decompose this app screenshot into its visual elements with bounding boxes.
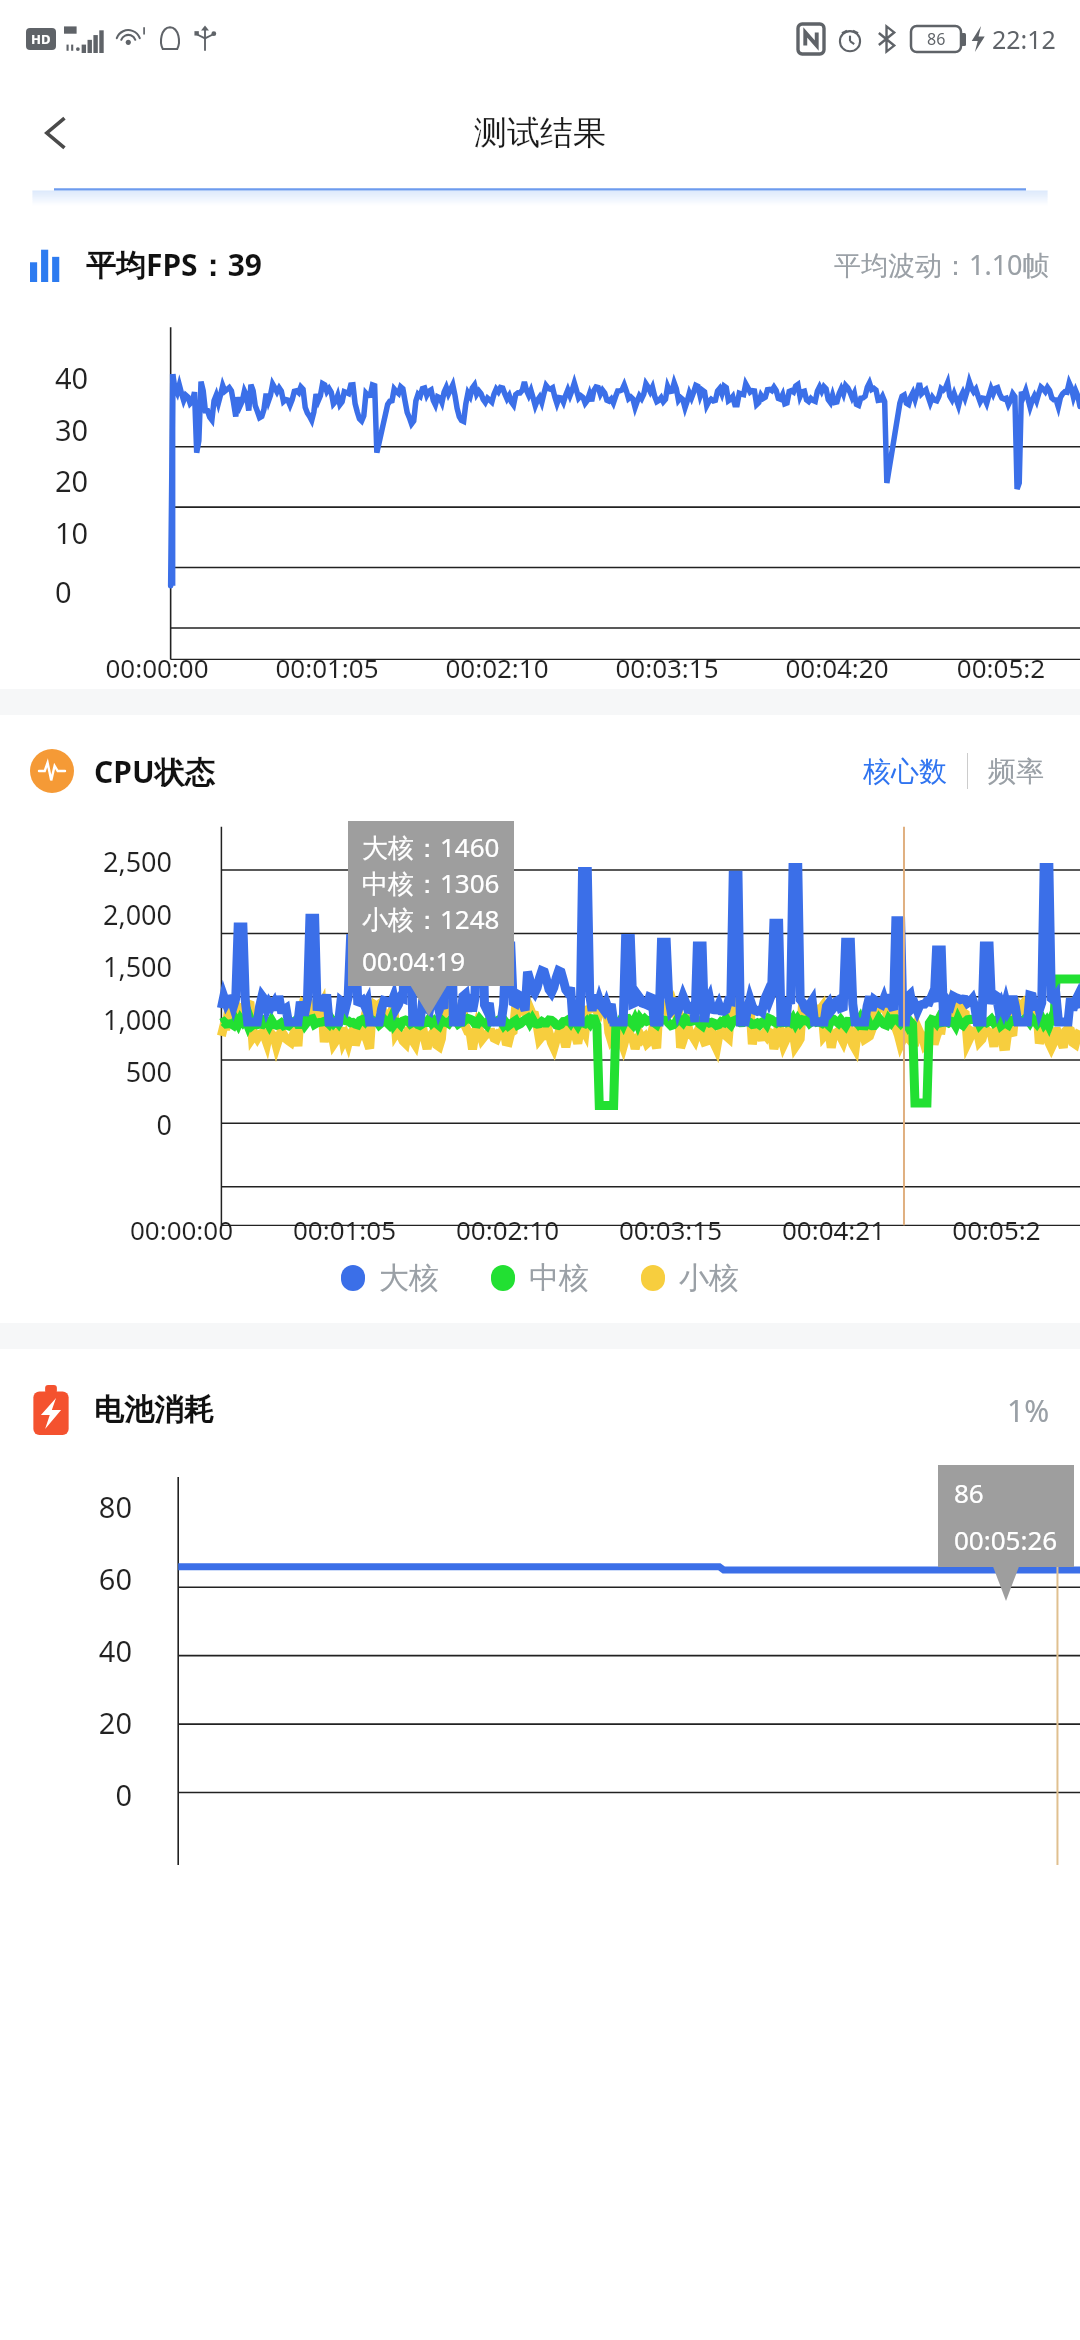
- staticText: 0: [0, 1106, 172, 1143]
- button[interactable]: 电池消耗: [30, 1385, 1050, 1435]
- button[interactable]: 核心数: [857, 750, 953, 793]
- staticText: 00:00:00: [72, 650, 242, 685]
- staticText: 中核：1306: [362, 865, 500, 901]
- staticText: 0: [55, 572, 72, 611]
- staticText: 00:02:10: [412, 650, 582, 685]
- staticText: 00:01:05: [242, 650, 412, 685]
- staticText: 1,000: [0, 1001, 172, 1038]
- staticText: 10: [55, 513, 89, 552]
- staticText: 2,500: [0, 843, 172, 880]
- staticText: 0: [0, 1775, 132, 1814]
- staticText: 小核: [679, 1259, 739, 1297]
- staticText: 30: [55, 410, 89, 449]
- staticText: 00:04:19: [362, 943, 466, 978]
- staticText: 1,500: [0, 948, 172, 985]
- staticText: 平均波动：1.10帧: [834, 246, 1050, 283]
- staticText: 平均FPS：39: [86, 244, 262, 285]
- staticText: HD: [31, 30, 51, 48]
- staticText: 22:12: [992, 22, 1056, 56]
- staticText: 500: [0, 1053, 172, 1090]
- staticText: 00:05:2: [915, 1212, 1078, 1247]
- staticText: CPU状态: [94, 751, 215, 792]
- staticText: 大核：1460: [362, 829, 500, 865]
- staticText: 40: [0, 1631, 132, 1670]
- staticText: 大核: [379, 1259, 439, 1297]
- staticText: 00:02:10: [426, 1212, 589, 1247]
- button[interactable]: 中核: [487, 1255, 593, 1301]
- button[interactable]: 频率: [982, 750, 1050, 793]
- staticText: 86: [954, 1475, 984, 1510]
- staticText: 1%: [1007, 1390, 1050, 1431]
- staticText: 00:01:05: [263, 1212, 426, 1247]
- staticText: 00:00:00: [100, 1212, 263, 1247]
- staticText: 测试结果: [474, 112, 606, 154]
- staticText: 00:04:20: [752, 650, 922, 685]
- staticText: 中核: [529, 1259, 589, 1297]
- staticText: 20: [55, 461, 89, 500]
- staticText: 00:05:2: [922, 650, 1080, 685]
- staticText: 80: [0, 1487, 132, 1526]
- staticText: 86: [927, 28, 946, 50]
- staticText: 00:05:26: [954, 1522, 1058, 1557]
- staticText: 电池消耗: [94, 1391, 214, 1429]
- staticText: 小核：1248: [362, 901, 500, 937]
- staticText: 60: [0, 1559, 132, 1598]
- staticText: 00:04:21: [752, 1212, 915, 1247]
- staticText: 核心数: [863, 754, 947, 789]
- button[interactable]: 小核: [637, 1255, 743, 1301]
- staticText: 00:03:15: [589, 1212, 752, 1247]
- button[interactable]: 平均FPS：39: [30, 244, 1050, 285]
- staticText: 频率: [988, 754, 1044, 789]
- button[interactable]: Back: [22, 98, 92, 168]
- button[interactable]: 大核: [337, 1255, 443, 1301]
- staticText: 20: [0, 1703, 132, 1742]
- staticText: 40: [55, 358, 89, 397]
- staticText: 2,000: [0, 896, 172, 933]
- staticText: 00:03:15: [582, 650, 752, 685]
